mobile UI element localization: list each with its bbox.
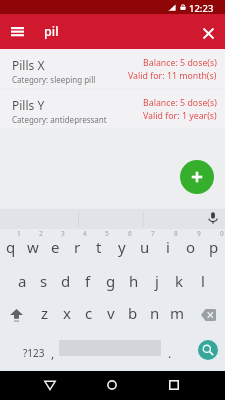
staticText: d: [61, 271, 71, 291]
button[interactable]: m: [166, 301, 188, 333]
staticText: p: [209, 237, 219, 257]
staticText: i: [166, 237, 170, 257]
button[interactable]: 4: [66, 227, 88, 259]
button[interactable]: Clear search: [195, 20, 221, 46]
staticText: Category: sleeping pill: [12, 74, 96, 85]
button[interactable]: ?123: [13, 344, 55, 362]
button[interactable]: .: [162, 344, 178, 362]
button[interactable]: 0: [202, 227, 225, 259]
button[interactable]: Search: [198, 340, 218, 360]
button[interactable]: l: [191, 270, 214, 302]
staticText: j: [155, 271, 159, 291]
button[interactable]: b: [122, 301, 144, 333]
button[interactable]: z: [33, 301, 56, 333]
button[interactable]: k: [168, 270, 191, 302]
staticText: c: [85, 303, 93, 323]
button[interactable]: 9: [179, 227, 202, 259]
button[interactable]: g: [99, 270, 122, 302]
staticText: q: [6, 237, 16, 257]
staticText: 7: [151, 229, 155, 238]
staticText: o: [186, 237, 196, 257]
button[interactable]: 8: [156, 227, 179, 259]
button[interactable]: c: [78, 301, 100, 333]
button[interactable]: 1: [0, 227, 22, 259]
button[interactable]: f: [77, 270, 99, 302]
staticText: Pills Y: [12, 97, 45, 113]
staticText: 5: [105, 229, 109, 238]
staticText: x: [63, 303, 71, 323]
staticText: b: [128, 303, 138, 323]
button[interactable]: Open navigation menu: [4, 18, 31, 45]
button[interactable]: Recents: [160, 371, 188, 399]
button[interactable]: Add: [180, 160, 214, 194]
staticText: s: [40, 271, 48, 291]
staticText: 6: [128, 229, 132, 238]
staticText: w: [27, 237, 39, 257]
button[interactable]: Backspace: [195, 301, 222, 328]
button[interactable]: 7: [133, 227, 156, 259]
button[interactable]: a: [11, 270, 33, 302]
button[interactable]: 6: [110, 227, 133, 259]
staticText: ?123: [23, 346, 45, 360]
staticText: 3: [61, 229, 65, 238]
staticText: t: [96, 237, 102, 257]
staticText: l: [201, 271, 205, 291]
button[interactable]: 5: [88, 227, 110, 259]
staticText: pil: [44, 23, 59, 40]
staticText: Pills X: [12, 57, 45, 73]
button[interactable]: Home: [98, 371, 126, 399]
button[interactable]: n: [144, 301, 166, 333]
staticText: v: [107, 303, 115, 323]
staticText: ,: [51, 345, 55, 361]
button[interactable]: Shift: [3, 302, 30, 329]
staticText: 4: [83, 229, 87, 238]
staticText: 12:23: [189, 2, 214, 15]
button[interactable]: h: [122, 270, 145, 302]
staticText: k: [175, 271, 184, 291]
staticText: u: [140, 237, 150, 257]
staticText: r: [74, 237, 81, 257]
button[interactable]: ,: [45, 344, 61, 362]
staticText: 0: [220, 229, 224, 238]
staticText: e: [51, 237, 60, 257]
button[interactable]: d: [55, 270, 77, 302]
staticText: z: [41, 303, 49, 323]
staticText: Balance: 5 dose(s): [143, 97, 217, 109]
staticText: Valid for: 1 year(s): [143, 110, 217, 122]
button[interactable]: v: [100, 301, 122, 333]
staticText: 2: [39, 229, 43, 238]
staticText: Balance: 5 dose(s): [143, 57, 217, 69]
staticText: y: [118, 237, 126, 257]
button[interactable]: Pills X: [0, 49, 225, 88]
button[interactable]: Pills Y: [0, 89, 225, 128]
staticText: f: [85, 271, 91, 291]
staticText: n: [150, 303, 160, 323]
staticText: m: [170, 303, 185, 323]
button[interactable]: s: [33, 270, 55, 302]
button[interactable]: 2: [22, 227, 44, 259]
button[interactable]: j: [145, 270, 168, 302]
staticText: g: [106, 271, 116, 291]
staticText: Category: antidepressant: [12, 114, 107, 125]
staticText: 9: [197, 229, 201, 238]
staticText: Valid for: 11 month(s): [128, 70, 217, 82]
button[interactable]: 3: [44, 227, 66, 259]
staticText: .: [168, 345, 172, 361]
staticText: h: [129, 271, 139, 291]
button[interactable]: Voice input: [204, 209, 222, 227]
staticText: a: [18, 271, 27, 291]
staticText: 8: [174, 229, 178, 238]
staticText: 1: [17, 229, 21, 238]
button[interactable]: Back: [36, 371, 64, 399]
button[interactable]: x: [56, 301, 78, 333]
